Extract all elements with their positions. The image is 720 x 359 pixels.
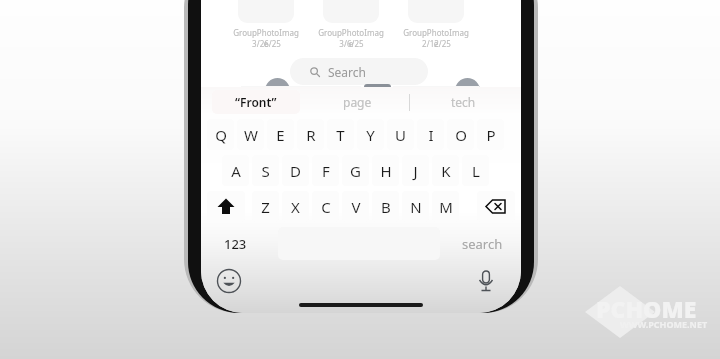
staticText: 3/6/25 xyxy=(339,38,364,49)
staticText: 3/26/25 xyxy=(252,38,281,49)
button[interactable]: E xyxy=(267,119,294,150)
staticText: PCHOME xyxy=(596,293,697,324)
staticText: page xyxy=(343,94,372,110)
button[interactable]: J xyxy=(402,155,429,186)
button[interactable]: “Front” xyxy=(212,90,300,114)
button[interactable]: G xyxy=(342,155,369,186)
staticText: T xyxy=(336,125,345,145)
staticText: “Front” xyxy=(235,94,277,110)
button[interactable]: K xyxy=(432,155,459,186)
button[interactable]: I xyxy=(417,119,444,150)
staticText: L xyxy=(472,161,480,181)
button[interactable]: H xyxy=(372,155,399,186)
staticText: GroupPhotoImage xyxy=(316,27,386,49)
button[interactable]: A xyxy=(222,155,249,186)
staticText: M xyxy=(439,197,453,217)
button[interactable]: O xyxy=(447,119,474,150)
button[interactable]: Q xyxy=(207,119,234,150)
button[interactable]: V xyxy=(342,191,369,222)
staticText: S xyxy=(261,161,270,181)
staticText: Search xyxy=(328,64,366,80)
button[interactable]: B xyxy=(372,191,399,222)
staticText: Y xyxy=(366,125,375,145)
staticText: E xyxy=(276,125,285,145)
staticText: I xyxy=(428,125,434,145)
staticText: Z xyxy=(261,197,270,217)
button[interactable]: Y xyxy=(357,119,384,150)
staticText: GroupPhotoImage xyxy=(231,27,301,49)
staticText: P xyxy=(486,125,496,145)
staticText: B xyxy=(381,197,391,217)
staticText: N xyxy=(410,197,422,217)
button[interactable]: tech xyxy=(418,90,508,114)
staticText: 2/12/25 xyxy=(422,38,451,49)
button[interactable]: R xyxy=(297,119,324,150)
staticText: H xyxy=(380,161,392,181)
button[interactable]: N xyxy=(402,191,429,222)
button[interactable]: Z xyxy=(252,191,279,222)
staticText: X xyxy=(291,197,300,217)
staticText: J xyxy=(413,161,418,181)
staticText: search xyxy=(462,235,503,253)
staticText: A xyxy=(231,161,241,181)
button[interactable]: S xyxy=(252,155,279,186)
button[interactable]: Dictate xyxy=(473,265,499,295)
staticText: 123 xyxy=(224,235,247,253)
button[interactable]: M xyxy=(432,191,459,222)
staticText: D xyxy=(290,161,301,181)
staticText: F xyxy=(322,161,330,181)
button[interactable]: T xyxy=(327,119,354,150)
staticText: GroupPhotoImage xyxy=(401,27,471,49)
button[interactable]: Shift xyxy=(207,191,245,222)
staticText: W xyxy=(244,125,258,145)
button[interactable]: Emoji xyxy=(215,267,243,295)
button[interactable]: X xyxy=(282,191,309,222)
staticText: O xyxy=(455,125,467,145)
button[interactable]: W xyxy=(237,119,264,150)
staticText: C xyxy=(321,197,331,217)
button[interactable]: page xyxy=(312,90,402,114)
button[interactable]: U xyxy=(387,119,414,150)
staticText: tech xyxy=(451,94,476,110)
staticText: U xyxy=(395,125,406,145)
staticText: WWW.PCHOME.NET xyxy=(620,318,708,330)
button[interactable]: P xyxy=(477,119,504,150)
button[interactable]: L xyxy=(462,155,489,186)
staticText: V xyxy=(351,197,361,217)
staticText: G xyxy=(350,161,361,181)
staticText: R xyxy=(306,125,316,145)
staticText: Q xyxy=(215,125,227,145)
button[interactable]: C xyxy=(312,191,339,222)
button[interactable]: F xyxy=(312,155,339,186)
button[interactable]: search xyxy=(450,227,515,260)
staticText: K xyxy=(441,161,451,181)
button[interactable]: Backspace xyxy=(477,191,515,222)
button[interactable]: D xyxy=(282,155,309,186)
button[interactable]: 123 xyxy=(207,227,263,260)
button[interactable]: Search xyxy=(290,58,428,85)
